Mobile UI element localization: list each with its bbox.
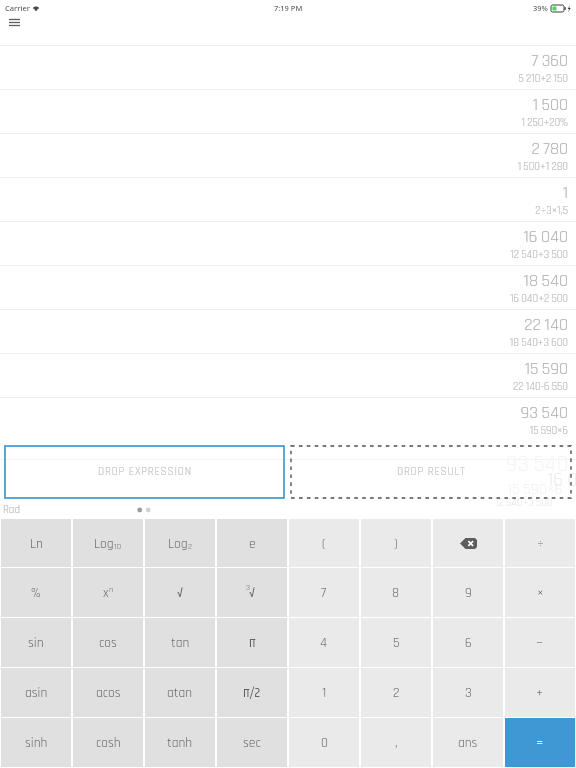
button[interactable]: x <box>73 568 143 617</box>
button[interactable]: sin <box>1 618 71 667</box>
button[interactable]: DROP RESULT <box>291 446 571 498</box>
button[interactable]: 1 <box>289 668 359 717</box>
staticText: × <box>537 584 544 601</box>
staticText: tanh <box>167 734 193 751</box>
button[interactable]: 1 <box>0 177 576 221</box>
button[interactable]: Ln <box>1 519 71 567</box>
button[interactable]: tanh <box>145 718 215 767</box>
staticText: 15 590 <box>524 358 568 380</box>
button[interactable]: 1 500 <box>0 89 576 133</box>
button[interactable]: cos <box>73 618 143 667</box>
button[interactable]: 22 140 <box>0 309 576 353</box>
button[interactable]: 6 <box>433 618 503 667</box>
button[interactable]: 16 040 <box>0 221 576 265</box>
staticText: 2 780 <box>531 138 568 160</box>
button[interactable]: ÷ <box>505 519 575 567</box>
button[interactable]: 2 780 <box>0 133 576 177</box>
staticText: ans <box>458 734 478 751</box>
button[interactable]: ( <box>289 519 359 567</box>
button[interactable]: π <box>217 618 287 667</box>
button[interactable]: % <box>1 568 71 617</box>
button[interactable]: 5 <box>361 618 431 667</box>
staticText: + <box>536 684 544 701</box>
button[interactable]: 9 <box>433 568 503 617</box>
staticText: √ <box>249 582 255 603</box>
button[interactable]: 8 <box>361 568 431 617</box>
staticText: acos <box>96 684 121 701</box>
staticText: 2 <box>188 541 193 552</box>
staticText: 1 500 <box>532 94 568 116</box>
staticText: 15 590×6 <box>529 424 568 438</box>
button[interactable]: Menu <box>1 16 27 36</box>
button[interactable]: √ <box>217 568 287 617</box>
staticText: Rad <box>3 503 20 517</box>
staticText: ÷ <box>537 535 544 552</box>
button[interactable]: acos <box>73 668 143 717</box>
button[interactable]: 18 540 <box>0 265 576 309</box>
button[interactable]: sinh <box>1 718 71 767</box>
staticText: 3 <box>465 684 472 701</box>
button[interactable]: 93 540 <box>0 397 576 441</box>
button[interactable]: Log <box>73 519 143 567</box>
staticText: 0 <box>321 734 328 751</box>
staticText: 9 <box>465 584 472 601</box>
button[interactable]: e <box>217 519 287 567</box>
button[interactable]: atan <box>145 668 215 717</box>
staticText: 16 040 <box>547 467 576 493</box>
button[interactable]: 0 <box>289 718 359 767</box>
staticText: π <box>249 632 256 653</box>
staticText: Log <box>94 535 114 552</box>
staticText: 22 140-6 550 <box>513 380 568 394</box>
button[interactable]: Backspace <box>433 519 503 567</box>
staticText: 3 <box>246 583 250 593</box>
button[interactable]: 3 <box>433 668 503 717</box>
button[interactable]: = <box>505 718 575 767</box>
button[interactable]: sec <box>217 718 287 767</box>
button[interactable]: π/2 <box>217 668 287 717</box>
button[interactable]: 4 <box>289 618 359 667</box>
button[interactable]: 15 590 <box>0 353 576 397</box>
staticText: 5 210+2 150 <box>518 72 568 86</box>
staticText: 1 <box>562 182 568 204</box>
button[interactable]: DROP EXPRESSION <box>5 446 284 498</box>
staticText: 93 540 <box>506 450 569 479</box>
button[interactable]: Log <box>145 519 215 567</box>
button[interactable]: cosh <box>73 718 143 767</box>
staticText: 10 <box>114 541 122 552</box>
button[interactable]: 2 <box>361 668 431 717</box>
staticText: 8 <box>392 584 400 601</box>
button[interactable]: 7 360 <box>0 45 576 89</box>
button[interactable]: ) <box>361 519 431 567</box>
staticText: e <box>249 535 256 552</box>
staticText: ( <box>322 535 326 552</box>
staticText: 4 <box>320 634 328 651</box>
staticText: sec <box>243 734 261 751</box>
button[interactable]: 7 <box>289 568 359 617</box>
staticText: 2÷3×1,5 <box>535 204 568 218</box>
staticText: 15 590×6 <box>507 479 563 499</box>
button[interactable]: × <box>505 568 575 617</box>
staticText: Log <box>168 535 188 552</box>
staticText: 12 540+3 500 <box>510 248 568 262</box>
staticText: 18 540+3 600 <box>509 336 568 350</box>
staticText: sinh <box>25 734 48 751</box>
staticText: 39% <box>533 3 548 13</box>
staticText: Carrier <box>5 3 30 13</box>
staticText: x <box>103 584 109 601</box>
staticText: 7:19 PM <box>274 3 303 13</box>
staticText: DROP RESULT <box>397 465 466 479</box>
staticText: % <box>31 584 41 601</box>
button[interactable]: ans <box>433 718 503 767</box>
staticText: ) <box>394 535 398 552</box>
button[interactable]: √ <box>145 568 215 617</box>
staticText: 12 540+3 500 <box>495 496 553 510</box>
button[interactable]: + <box>505 668 575 717</box>
button[interactable]: asin <box>1 668 71 717</box>
staticText: π/2 <box>243 682 261 703</box>
staticText: tan <box>171 634 190 651</box>
staticText: DROP EXPRESSION <box>98 465 192 479</box>
button[interactable]: tan <box>145 618 215 667</box>
staticText: cos <box>99 634 117 651</box>
